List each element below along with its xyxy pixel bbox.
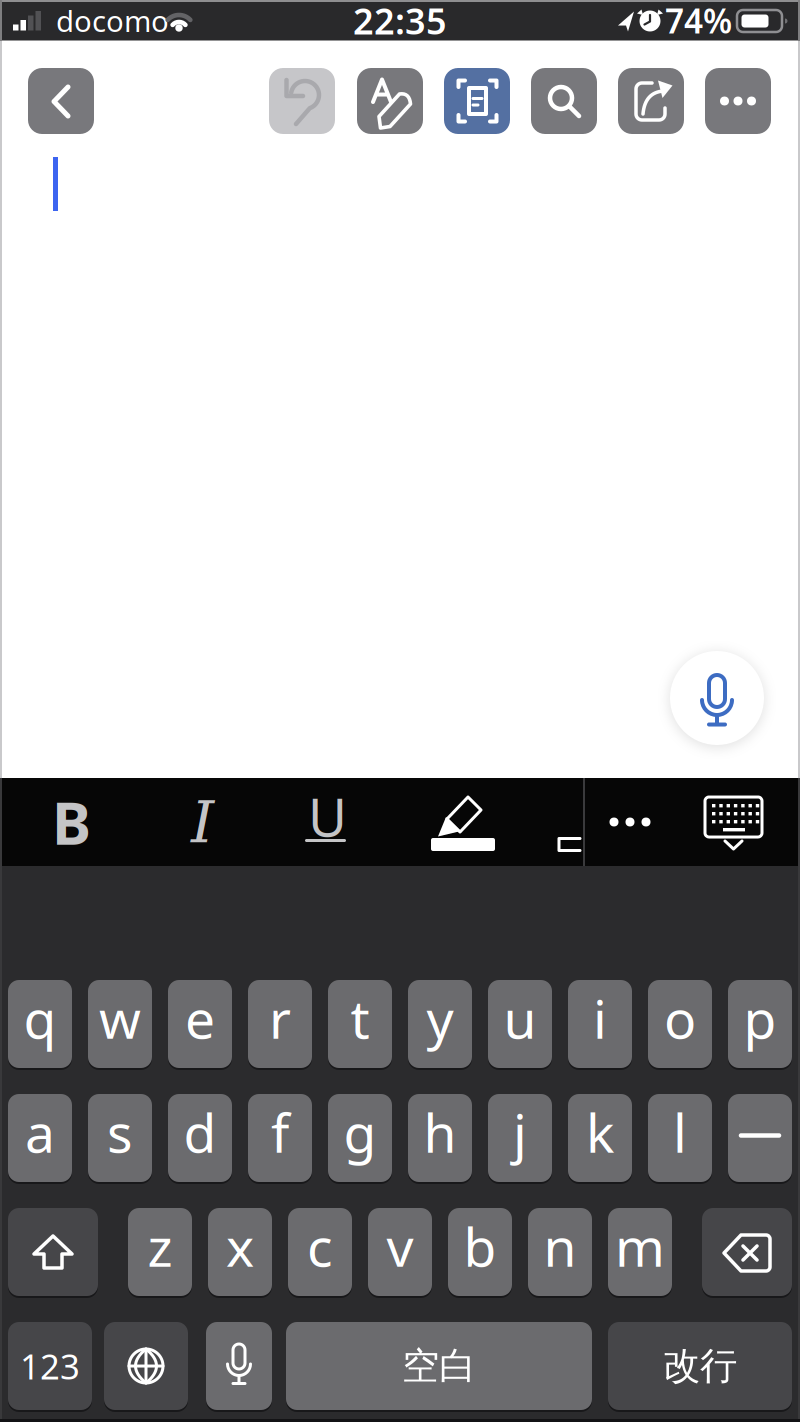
button[interactable]: s: [88, 1093, 152, 1183]
staticText: u: [503, 983, 536, 1053]
button[interactable]: b: [448, 1207, 512, 1297]
staticText: q: [23, 983, 56, 1053]
button[interactable]: More: [705, 68, 771, 134]
button[interactable]: g: [328, 1093, 392, 1183]
button[interactable]: z: [128, 1207, 192, 1297]
button[interactable]: Search: [531, 68, 597, 134]
button[interactable]: m: [608, 1207, 672, 1297]
button[interactable]: More formatting: [585, 778, 675, 866]
staticText: t: [350, 983, 369, 1053]
button[interactable]: i: [568, 979, 632, 1069]
staticText: I: [191, 788, 214, 856]
button[interactable]: 123: [8, 1321, 92, 1411]
button[interactable]: Undo: [269, 68, 335, 134]
staticText: p: [743, 983, 776, 1053]
button[interactable]: 改行: [608, 1321, 792, 1411]
staticText: i: [593, 983, 607, 1053]
staticText: l: [673, 1097, 687, 1167]
staticText: B: [52, 783, 91, 861]
button[interactable]: Delete: [702, 1207, 792, 1297]
staticText: z: [147, 1211, 172, 1281]
staticText: a: [25, 1097, 55, 1167]
button[interactable]: f: [248, 1093, 312, 1183]
staticText: d: [183, 1097, 216, 1167]
button[interactable]: Dictate: [670, 651, 764, 745]
button[interactable]: Back: [28, 68, 94, 134]
button[interactable]: Dictation: [206, 1321, 272, 1411]
button[interactable]: t: [328, 979, 392, 1069]
button[interactable]: x: [208, 1207, 272, 1297]
button[interactable]: d: [168, 1093, 232, 1183]
staticText: j: [513, 1097, 527, 1167]
staticText: h: [423, 1097, 456, 1167]
staticText: e: [185, 983, 215, 1053]
button[interactable]: 空白: [286, 1321, 592, 1411]
button[interactable]: h: [408, 1093, 472, 1183]
button[interactable]: q: [8, 979, 72, 1069]
staticText: s: [107, 1097, 133, 1167]
staticText: x: [226, 1211, 254, 1281]
button[interactable]: o: [648, 979, 712, 1069]
button[interactable]: Mobile view: [444, 68, 510, 134]
staticText: v: [386, 1211, 413, 1281]
button[interactable]: Bold: [6, 778, 137, 866]
button[interactable]: e: [168, 979, 232, 1069]
button[interactable]: Italic: [137, 778, 268, 866]
button[interactable]: Underline: [262, 778, 393, 866]
staticText: o: [664, 983, 696, 1053]
button[interactable]: w: [88, 979, 152, 1069]
staticText: m: [615, 1211, 665, 1281]
staticText: w: [99, 983, 141, 1053]
button[interactable]: Next keyboard: [104, 1321, 188, 1411]
button[interactable]: y: [408, 979, 472, 1069]
staticText: 74%: [665, 0, 732, 43]
staticText: docomo: [56, 1, 169, 40]
button[interactable]: a: [8, 1093, 72, 1183]
staticText: U: [308, 781, 347, 851]
button[interactable]: p: [728, 979, 792, 1069]
staticText: y: [426, 983, 453, 1053]
button[interactable]: Hide keyboard: [675, 778, 800, 866]
staticText: 空白: [402, 1343, 476, 1389]
staticText: 22:35: [353, 0, 447, 44]
button[interactable]: n: [528, 1207, 592, 1297]
staticText: f: [271, 1097, 289, 1167]
staticText: g: [343, 1097, 376, 1167]
button[interactable]: l: [648, 1093, 712, 1183]
button[interactable]: ー: [728, 1093, 792, 1183]
staticText: 改行: [663, 1343, 737, 1389]
button[interactable]: Highlight: [393, 778, 524, 866]
staticText: k: [586, 1097, 614, 1167]
staticText: b: [463, 1211, 496, 1281]
button[interactable]: r: [248, 979, 312, 1069]
staticText: c: [307, 1211, 333, 1281]
button[interactable]: v: [368, 1207, 432, 1297]
button[interactable]: u: [488, 979, 552, 1069]
button[interactable]: j: [488, 1093, 552, 1183]
staticText: 123: [20, 1343, 80, 1389]
staticText: r: [269, 983, 291, 1053]
button[interactable]: c: [288, 1207, 352, 1297]
button[interactable]: k: [568, 1093, 632, 1183]
staticText: n: [543, 1211, 576, 1281]
button[interactable]: Share: [618, 68, 684, 134]
button[interactable]: Format: [357, 68, 423, 134]
button[interactable]: Shift: [8, 1207, 98, 1297]
